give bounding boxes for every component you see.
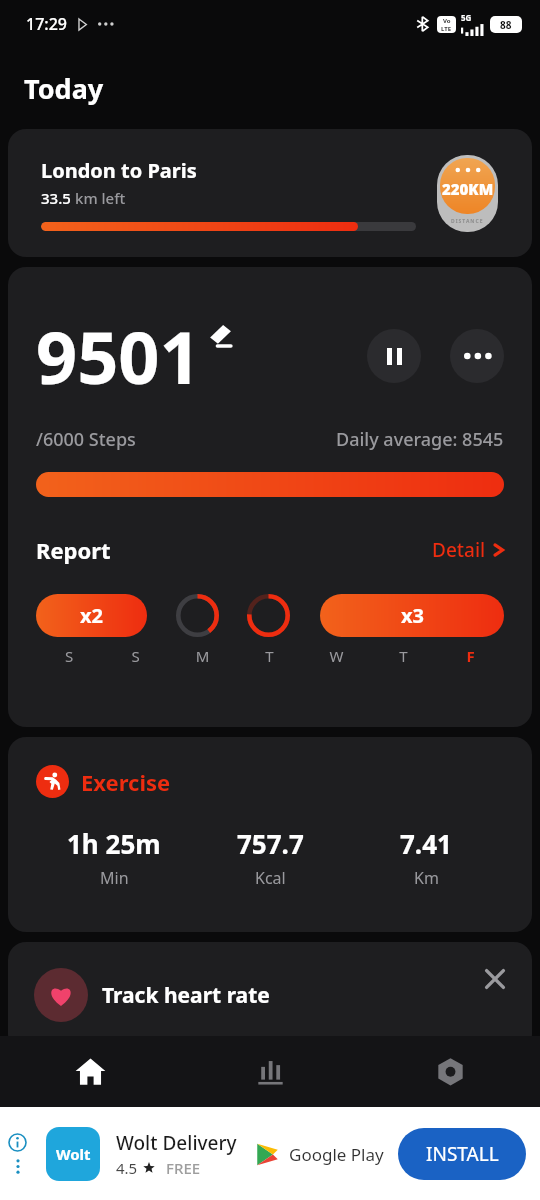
- staticText: 220KM: [442, 179, 494, 199]
- staticText: 7.41: [400, 826, 452, 861]
- staticText: Today: [24, 70, 104, 107]
- staticText: Kcal: [255, 867, 286, 889]
- staticText: 88: [500, 18, 512, 32]
- staticText: Wolt: [56, 1144, 91, 1164]
- button[interactable]: London to Paris: [8, 129, 532, 257]
- button[interactable]: Pause: [367, 329, 421, 383]
- staticText: T: [236, 646, 303, 666]
- button[interactable]: Profile: [360, 1036, 540, 1107]
- button[interactable]: Track heart rate: [8, 942, 532, 1052]
- staticText: x3: [401, 602, 424, 629]
- button[interactable]: x3: [320, 594, 504, 637]
- button[interactable]: Home: [0, 1036, 180, 1107]
- button[interactable]: More options: [450, 329, 504, 383]
- staticText: 1h 25m: [67, 826, 161, 861]
- staticText: 4.5: [116, 1158, 138, 1178]
- staticText: Detail: [432, 537, 486, 563]
- staticText: Min: [100, 867, 129, 889]
- button[interactable]: x2: [36, 594, 147, 637]
- staticText: FREE: [166, 1158, 201, 1178]
- button[interactable]: Exercise: [8, 737, 532, 932]
- staticText: M: [169, 646, 236, 666]
- staticText: Wolt Delivery: [116, 1130, 237, 1156]
- staticText: Vo: [443, 17, 451, 25]
- staticText: 5G: [461, 12, 472, 23]
- staticText: London to Paris: [41, 157, 197, 184]
- staticText: Report: [36, 535, 111, 565]
- staticText: 33.5: [41, 188, 75, 208]
- staticText: 9501: [36, 307, 201, 405]
- button[interactable]: Detail: [432, 537, 504, 563]
- staticText: 757.7: [237, 826, 304, 861]
- button[interactable]: INSTALL: [398, 1128, 526, 1180]
- staticText: x2: [80, 602, 103, 629]
- staticText: Track heart rate: [102, 981, 270, 1010]
- staticText: W: [303, 646, 370, 666]
- staticText: T: [370, 646, 437, 666]
- staticText: km left: [75, 188, 126, 208]
- button[interactable]: Edit goal: [207, 323, 233, 349]
- staticText: Exercise: [81, 767, 171, 797]
- staticText: INSTALL: [426, 1141, 499, 1167]
- staticText: LTE: [441, 25, 452, 33]
- staticText: S: [36, 646, 102, 666]
- staticText: Google Play: [289, 1143, 384, 1166]
- staticText: /6000 Steps: [36, 427, 136, 452]
- staticText: S: [102, 646, 169, 666]
- button[interactable]: Statistics: [180, 1036, 360, 1107]
- staticText: F: [437, 646, 504, 666]
- staticText: 17:29: [26, 13, 67, 35]
- staticText: Km: [414, 867, 439, 889]
- staticText: Daily average: 8545: [336, 427, 504, 452]
- staticText: DISTANCE: [451, 218, 484, 225]
- button[interactable]: Close: [480, 964, 510, 994]
